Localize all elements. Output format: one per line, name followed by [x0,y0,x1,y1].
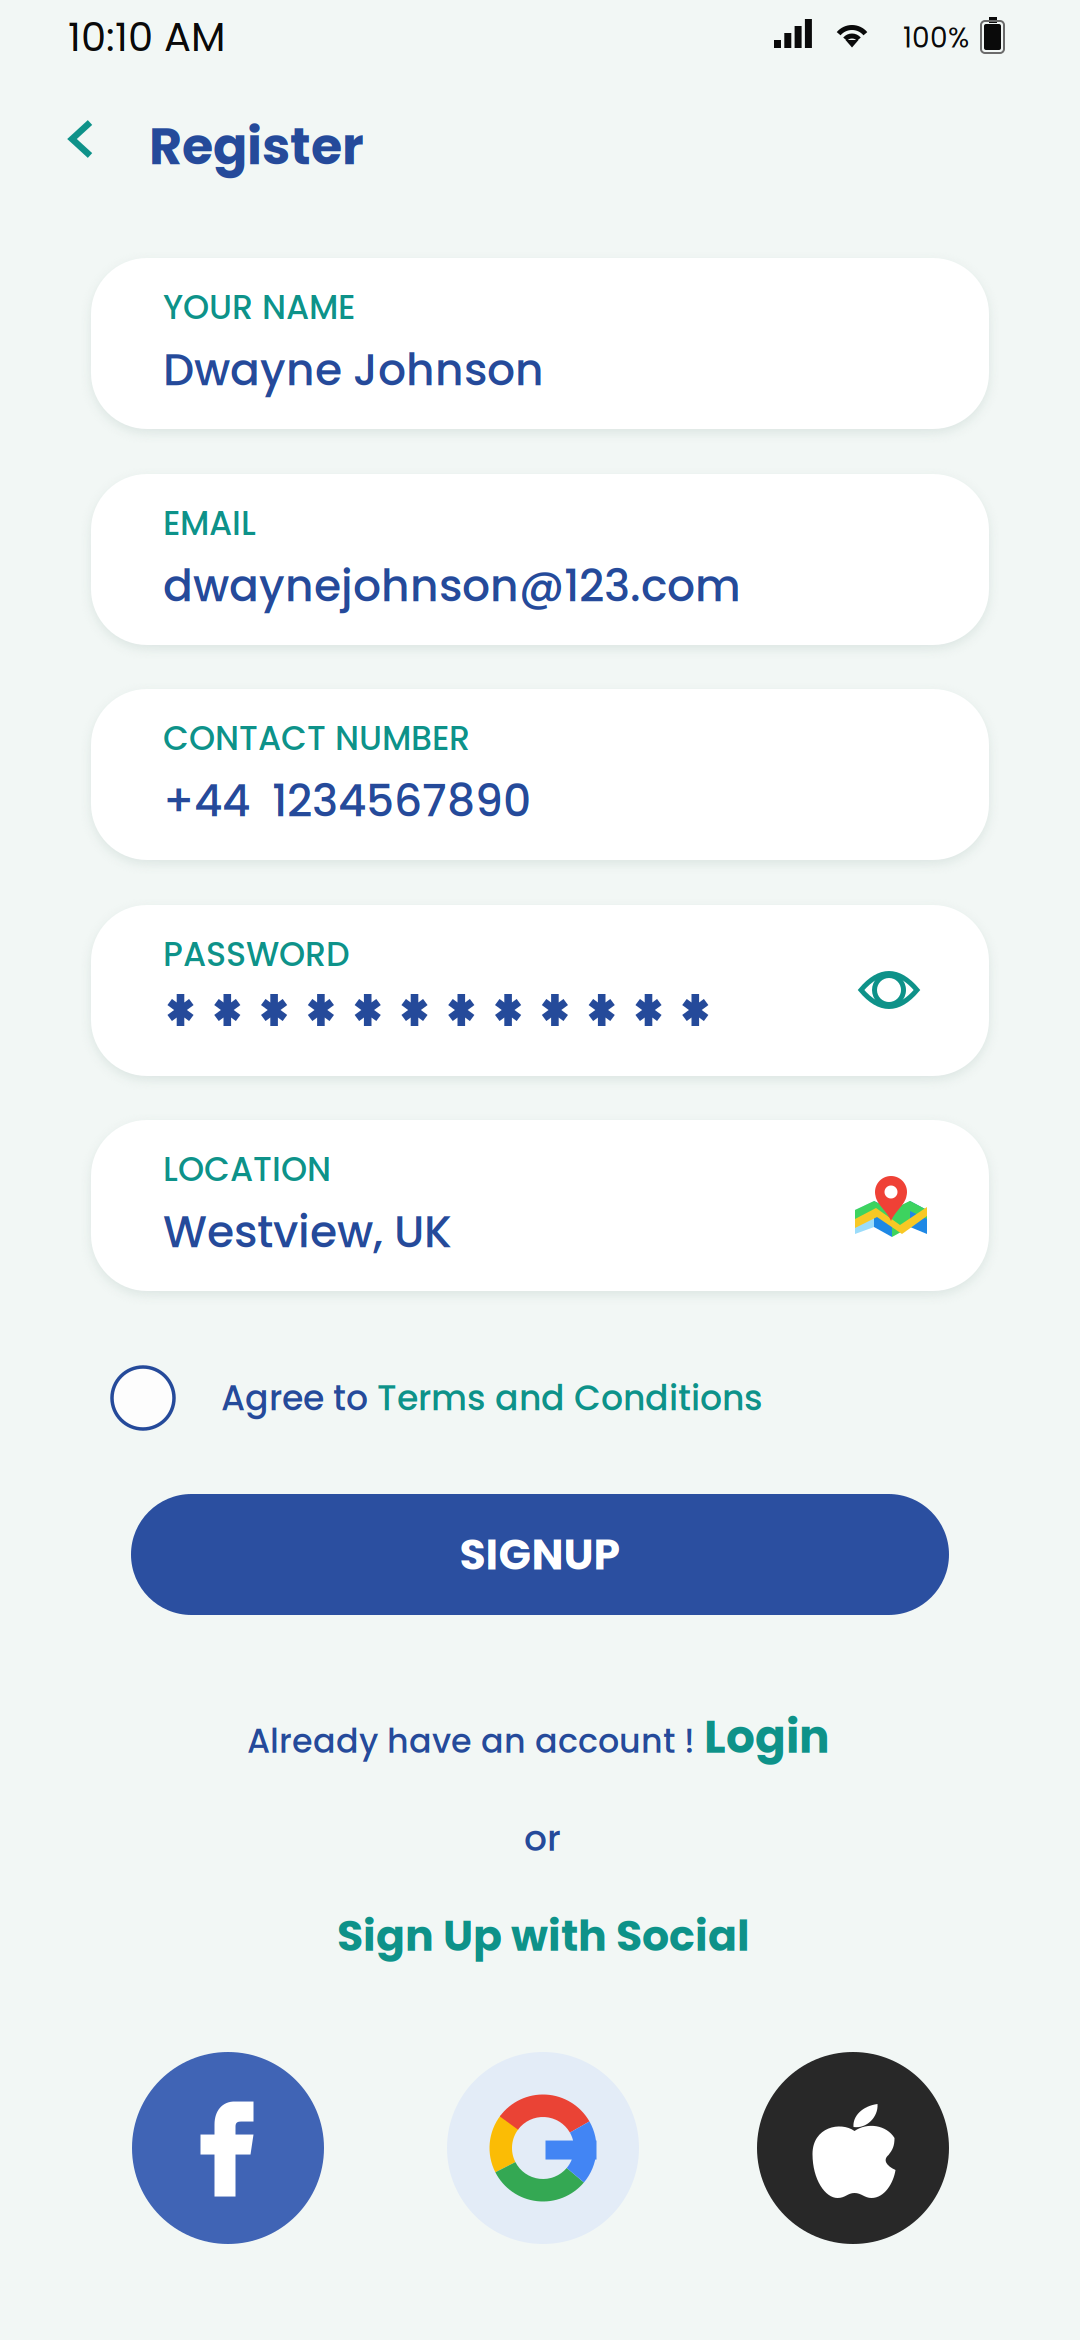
staticText: EMAIL [163,500,256,547]
staticText: YOUR NAME [163,284,355,331]
staticText: Dwayne Johnson [163,339,544,401]
staticText: CONTACT NUMBER [163,715,470,762]
button[interactable]: Show password [834,935,944,1045]
staticText: dwaynejohnson@123.com [163,555,741,617]
staticText: Already have an account ! [247,1718,704,1765]
button[interactable]: Agree to [112,1348,763,1448]
staticText: LOCATION [163,1146,331,1193]
staticText: Westview, UK [163,1201,452,1263]
staticText: Terms and Conditions [377,1374,763,1422]
button[interactable]: SIGNUP [131,1494,949,1615]
staticText: +44 1234567890 [163,770,531,832]
staticText: Login [704,1705,830,1769]
staticText: SIGNUP [459,1525,620,1584]
staticText: Agree to [221,1374,377,1422]
button[interactable]: Sign up with Apple [757,2052,949,2244]
button[interactable]: Sign up with Google [447,2052,639,2244]
staticText: Register [149,111,364,182]
staticText: 10:10 AM [68,9,225,65]
button[interactable]: Back [31,89,131,189]
staticText: Sign Up with Social [337,1906,750,1966]
staticText: or [524,1813,561,1863]
button[interactable]: Sign up with Facebook [132,2052,324,2244]
button[interactable]: Already have an account ! [247,1697,830,1777]
staticText: PASSWORD [163,931,350,978]
staticText: 100% [903,18,969,57]
